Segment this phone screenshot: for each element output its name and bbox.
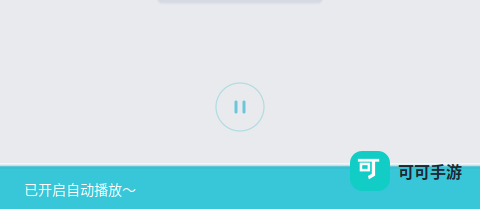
staticText: 已开启自动播放～ <box>24 179 136 199</box>
button[interactable]: Pause <box>216 83 264 131</box>
staticText: 可可手游 <box>398 159 462 183</box>
button[interactable]: 可可手游 <box>350 151 462 191</box>
